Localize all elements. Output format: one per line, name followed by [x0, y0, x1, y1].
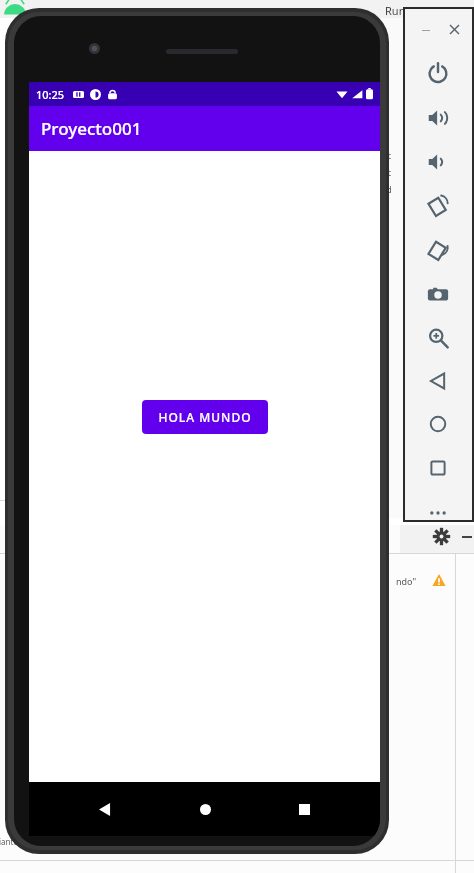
button[interactable]: Minimize — [418, 22, 434, 38]
staticText: ndo" — [396, 575, 417, 587]
button[interactable]: Rotate left — [418, 186, 458, 226]
staticText: tt — [382, 150, 392, 161]
staticText: iante — [0, 836, 18, 847]
button[interactable]: Close — [446, 21, 462, 37]
staticText: HOLA MUNDO — [158, 409, 252, 425]
staticText: t — [382, 252, 387, 263]
button[interactable]: Back — [418, 361, 458, 401]
button[interactable]: Rotate right — [418, 230, 458, 270]
button[interactable]: Take screenshot — [418, 274, 458, 314]
button[interactable]: Back — [81, 785, 129, 833]
staticText: tt — [382, 167, 392, 178]
staticText: p — [382, 235, 387, 246]
button[interactable]: Volume down — [418, 142, 458, 182]
button[interactable]: Zoom — [418, 318, 458, 358]
staticText: ) — [382, 201, 387, 212]
button[interactable]: Volume up — [418, 98, 458, 138]
staticText: ad — [382, 184, 392, 195]
button[interactable]: Home — [181, 785, 229, 833]
button[interactable]: Power — [418, 53, 458, 93]
staticText: Run — [385, 3, 406, 18]
button[interactable]: Overview — [418, 448, 458, 488]
button[interactable]: More — [418, 493, 458, 533]
button[interactable]: Home — [418, 404, 458, 444]
button[interactable]: Recent apps — [280, 785, 328, 833]
staticText: b — [382, 218, 387, 229]
staticText: 10:25 — [36, 87, 65, 102]
staticText: Proyecto001 — [41, 117, 142, 140]
button[interactable]: HOLA MUNDO — [142, 400, 268, 434]
